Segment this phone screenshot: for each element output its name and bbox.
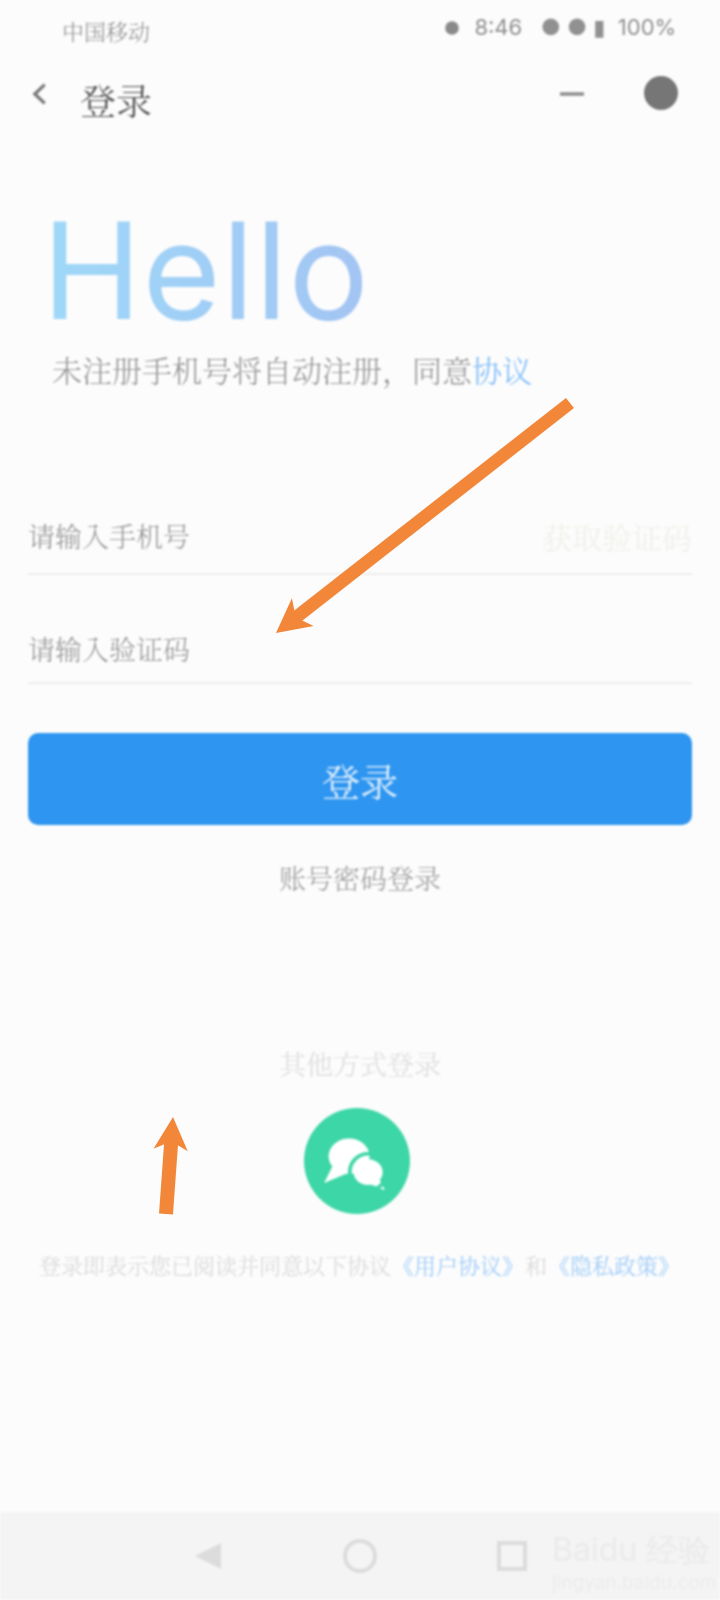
button[interactable]: Sign in with WeChat (304, 1108, 410, 1214)
staticText: 和 (525, 1249, 548, 1281)
staticText: Hello (42, 189, 370, 351)
button[interactable]: Recent apps (476, 1520, 548, 1592)
staticText: 获取验证码 (542, 514, 692, 557)
button[interactable]: Home (324, 1520, 396, 1592)
staticText: 账号密码登录 (279, 858, 441, 897)
button[interactable]: 《隐私政策》 (548, 1249, 681, 1281)
staticText: 登录即表示您已阅读并同意以下协议 (39, 1249, 392, 1281)
staticText: 8:46 ● ● ▮ 100% (462, 14, 677, 41)
button[interactable]: 请输入手机号 (28, 506, 468, 564)
staticText: 《用户协议》 (392, 1249, 525, 1281)
staticText: 请输入验证码 (28, 629, 190, 668)
staticText: 《隐私政策》 (548, 1249, 681, 1281)
button[interactable]: Back (172, 1520, 244, 1592)
staticText: 协议 (472, 347, 532, 390)
staticText: 其他方式登录 (279, 1044, 441, 1083)
staticText: 登录 (80, 74, 153, 126)
button[interactable]: 请输入验证码 (28, 619, 692, 677)
staticText: 中国移动 (62, 15, 151, 47)
staticText: 登录 (322, 752, 399, 807)
button[interactable]: 账号密码登录 (261, 848, 459, 907)
button[interactable]: User profile (632, 64, 690, 122)
button[interactable]: 登录 (28, 733, 692, 825)
staticText: 请输入手机号 (28, 516, 190, 555)
button[interactable]: 获取验证码 (498, 506, 692, 564)
button[interactable]: Back (16, 70, 64, 118)
staticText: 未注册手机号将自动注册，同意 (52, 347, 472, 390)
button[interactable]: Minimize (546, 68, 598, 120)
button[interactable]: 《用户协议》 (392, 1249, 525, 1281)
